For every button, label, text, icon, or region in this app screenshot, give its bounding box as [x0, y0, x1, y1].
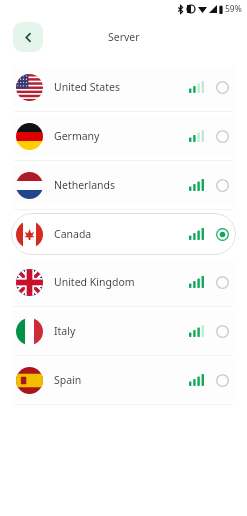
- staticText: Server: [108, 30, 140, 44]
- button[interactable]: Germany: [11, 115, 236, 157]
- button[interactable]: Spain: [11, 359, 236, 401]
- button[interactable]: Italy: [11, 310, 236, 352]
- button[interactable]: United Kingdom: [11, 261, 236, 303]
- staticText: United States: [54, 80, 120, 94]
- staticText: Canada: [54, 227, 92, 241]
- button[interactable]: United States: [11, 66, 236, 108]
- button[interactable]: Back: [13, 22, 43, 52]
- staticText: United Kingdom: [54, 275, 135, 289]
- button[interactable]: Canada: [11, 213, 236, 255]
- button[interactable]: Netherlands: [11, 164, 236, 206]
- staticText: Italy: [54, 324, 76, 338]
- staticText: Germany: [54, 129, 100, 143]
- staticText: Spain: [54, 373, 82, 387]
- staticText: Netherlands: [54, 178, 116, 192]
- staticText: 59%: [225, 3, 242, 15]
